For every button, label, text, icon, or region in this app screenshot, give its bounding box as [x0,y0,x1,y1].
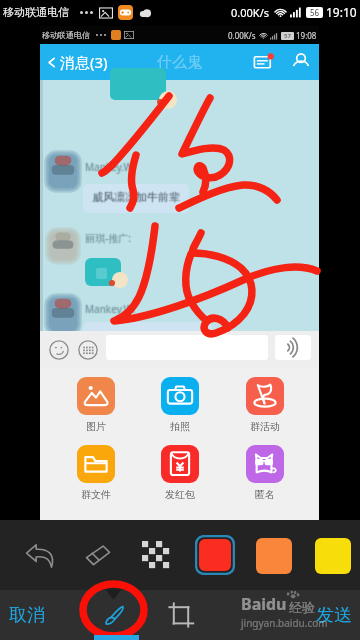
staticText: Mankey.W: [85,303,136,317]
button[interactable]: Group members [289,50,313,74]
staticText: 威风凛凛加牛前辈 [92,189,180,203]
staticText: 丽琪-推广: [86,231,132,245]
staticText: 19:08 [296,30,317,41]
staticText: Mankey.W: [86,302,137,316]
button[interactable]: Red colour [195,535,235,575]
button[interactable]: 发送 [316,604,360,627]
staticText: 威风凛凛加牛前辈 [93,190,181,204]
staticText: 威风凛凛加牛前辈 [92,191,180,205]
staticText: 群文件 [81,488,111,501]
staticText: 发红包 [165,488,195,501]
staticText: 移动联通电信 [42,30,90,40]
button[interactable] [106,335,268,360]
staticText: 19:10 [326,4,357,20]
staticText: 移动联通电信 [3,5,69,19]
staticText: Baidu [241,593,287,615]
staticText: 拍照 [170,420,190,433]
staticText: Mankey.W: [84,160,135,174]
staticText: 丽琪-推广: [85,230,131,244]
button[interactable]: Yellow colour [315,538,351,574]
button[interactable]: 图片 [68,377,124,433]
button[interactable]: Crop [166,600,196,630]
staticText: 0.00K/s [231,5,269,20]
staticText: Mankey.W: [84,302,135,316]
staticText: 什么鬼 [157,53,202,72]
staticText: 发现牛郎商兜了 [129,334,206,348]
button[interactable]: Eraser [82,539,114,571]
button[interactable]: 匿名 [237,445,293,501]
staticText: 经验 [289,599,315,615]
staticText: 发现牛郎商兜了 [128,335,205,349]
button[interactable]: Undo [24,539,56,571]
staticText: 发现牛郎商兜了 [128,333,205,347]
button[interactable]: 群活动 [237,377,293,433]
button[interactable]: Brush [99,600,129,630]
staticText: jingyan.baidu.com [241,616,328,630]
button[interactable]: 拍照 [152,377,208,433]
button[interactable]: 发红包 [152,445,208,501]
staticText: Mankey.W: [85,302,136,316]
staticText: Mankey.W: [85,160,136,174]
staticText: 56 [310,7,320,18]
staticText: Mankey.W: [85,159,136,173]
staticText: 0.00K/s [228,30,256,41]
button[interactable]: Voice message [275,335,311,360]
button[interactable]: 群文件 [68,445,124,501]
staticText: 丽琪-推广: [85,232,131,246]
button[interactable]: Keyboard [76,338,100,362]
staticText: 群活动 [250,420,280,433]
staticText: 57 [284,32,291,40]
button[interactable]: Emoji [47,338,71,362]
button[interactable]: Mosaic [142,541,170,569]
button[interactable]: 取消 [0,604,45,627]
staticText: 发现牛郎商兜了 [127,334,204,348]
staticText: Mankey.W: [85,161,136,175]
staticText: 发现牛郎商兜了 [128,334,205,348]
staticText: 匿名 [255,488,275,501]
staticText: 威风凛凛加牛前辈 [92,190,180,204]
staticText: 丽琪-推广: [84,231,130,245]
button[interactable]: Messages [252,50,276,74]
staticText: 丽琪-推广: [85,231,131,245]
button[interactable]: 消息(3) [40,52,114,72]
staticText: Mankey.W: [85,301,136,315]
staticText: 图片 [86,420,106,433]
staticText: 威风凛凛加牛前辈 [91,190,179,204]
staticText: Mankey.W: [86,160,137,174]
staticText: 消息(3) [60,52,108,72]
button[interactable]: Orange colour [256,538,292,574]
